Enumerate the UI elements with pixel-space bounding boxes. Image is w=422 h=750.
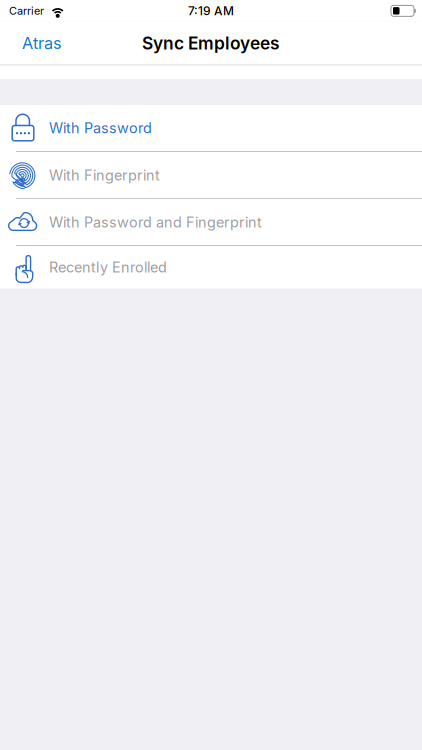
staticText: With Password xyxy=(49,119,152,137)
button[interactable]: Recently Enrolled xyxy=(0,246,422,289)
button[interactable]: With Password xyxy=(0,105,422,152)
staticText: Carrier xyxy=(9,4,44,17)
staticText: With Fingerprint xyxy=(49,166,160,184)
staticText: Sync Employees xyxy=(142,33,280,54)
staticText: Recently Enrolled xyxy=(49,258,167,276)
button[interactable]: With Fingerprint xyxy=(0,152,422,199)
staticText: 7:19 AM xyxy=(188,4,234,18)
button[interactable]: With Password and Fingerprint xyxy=(0,199,422,246)
button[interactable]: Atras xyxy=(0,24,72,62)
staticText: With Password and Fingerprint xyxy=(49,213,262,231)
staticText: Atras xyxy=(22,33,62,53)
